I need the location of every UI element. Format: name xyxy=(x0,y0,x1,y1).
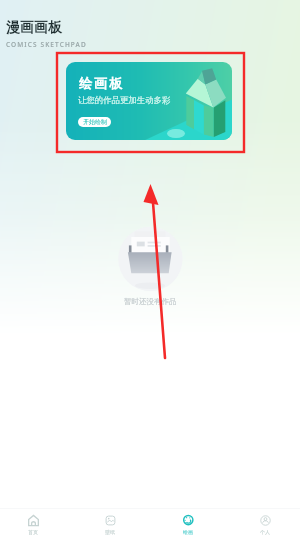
staticText: 漫画画板 xyxy=(6,19,62,37)
staticText: COMICS SKETCHPAD xyxy=(6,40,87,49)
button[interactable]: Draw xyxy=(152,508,224,539)
staticText: 首页 xyxy=(28,529,38,535)
button[interactable]: Wallpaper xyxy=(74,508,146,539)
button[interactable]: 开始绘制 xyxy=(78,117,111,127)
staticText: 开始绘制 xyxy=(83,118,107,126)
button[interactable]: Profile xyxy=(229,508,300,539)
staticText: 暂时还没有作品 xyxy=(124,297,177,306)
staticText: 壁纸 xyxy=(105,529,115,535)
staticText: 绘画板 xyxy=(78,75,123,91)
button[interactable]: Home xyxy=(0,508,69,539)
staticText: 绘画 xyxy=(183,529,193,535)
staticText: 让您的作品更加生动多彩 xyxy=(78,95,171,106)
button[interactable]: 绘画板 xyxy=(66,62,232,140)
staticText: 个人 xyxy=(260,529,270,535)
